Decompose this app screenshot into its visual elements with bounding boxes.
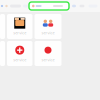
button[interactable]: App [7,41,32,66]
button[interactable]: Back [0,0,4,12]
button[interactable]: Extensions [70,0,78,12]
button[interactable]: New tab [22,0,29,12]
button[interactable]: App [7,14,32,39]
staticText: service [41,57,54,62]
button[interactable]: App [34,41,61,66]
staticText: service [13,30,26,35]
button[interactable]: Address and search [29,0,69,12]
button[interactable]: Reload [4,0,9,12]
button[interactable]: Tab [9,0,22,12]
staticText: service [41,30,54,35]
button[interactable]: Bookmarks [78,0,86,12]
button[interactable]: App [34,14,61,39]
staticText: service [13,57,26,62]
